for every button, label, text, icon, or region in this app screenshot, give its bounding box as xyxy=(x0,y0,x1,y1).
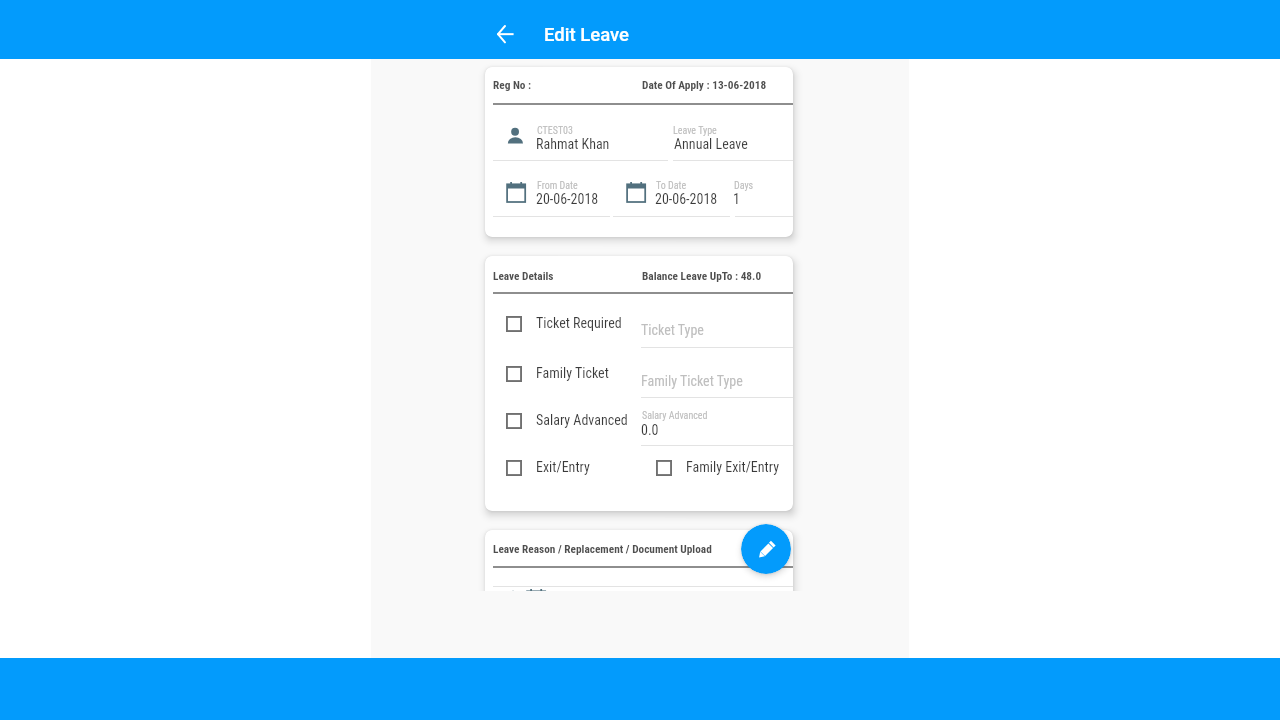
button[interactable]: Toggle xyxy=(656,460,672,476)
staticText: 1 xyxy=(733,191,740,207)
staticText: Reg No : xyxy=(493,79,532,92)
button[interactable]: Edit xyxy=(741,524,791,574)
button[interactable]: Toggle xyxy=(506,366,522,382)
staticText: Ticket Type xyxy=(641,322,704,338)
staticText: Days xyxy=(734,180,754,192)
button[interactable]: Toggle xyxy=(506,413,522,429)
staticText: 20-06-2018 xyxy=(655,191,718,207)
staticText: Family Ticket Type xyxy=(641,373,743,389)
staticText: CTEST03 xyxy=(537,125,573,137)
staticText: Leave Type xyxy=(673,125,717,137)
staticText: Salary Advanced xyxy=(642,410,708,422)
staticText: Edit Leave xyxy=(544,24,630,46)
staticText: Leave Details xyxy=(493,270,554,283)
button[interactable]: Back xyxy=(486,15,524,53)
button[interactable]: Toggle xyxy=(506,316,522,332)
staticText: Family Ticket xyxy=(536,365,609,381)
staticText: Salary Advanced xyxy=(536,412,628,428)
staticText: Date Of Apply : 13-06-2018 xyxy=(642,79,767,92)
staticText: Balance Leave UpTo : 48.0 xyxy=(642,270,762,283)
staticText: 20-06-2018 xyxy=(536,191,599,207)
staticText: Rahmat Khan xyxy=(536,136,610,152)
staticText: Family Exit/Entry xyxy=(686,459,779,475)
staticText: From Date xyxy=(537,180,578,192)
staticText: Exit/Entry xyxy=(536,459,590,475)
staticText: Annual Leave xyxy=(674,136,748,152)
button[interactable]: Toggle xyxy=(506,460,522,476)
staticText: To Date xyxy=(656,180,687,192)
staticText: 0.0 xyxy=(641,422,659,438)
staticText: Ticket Required xyxy=(536,315,622,331)
staticText: Leave Reason / Replacement / Document Up… xyxy=(493,543,712,556)
